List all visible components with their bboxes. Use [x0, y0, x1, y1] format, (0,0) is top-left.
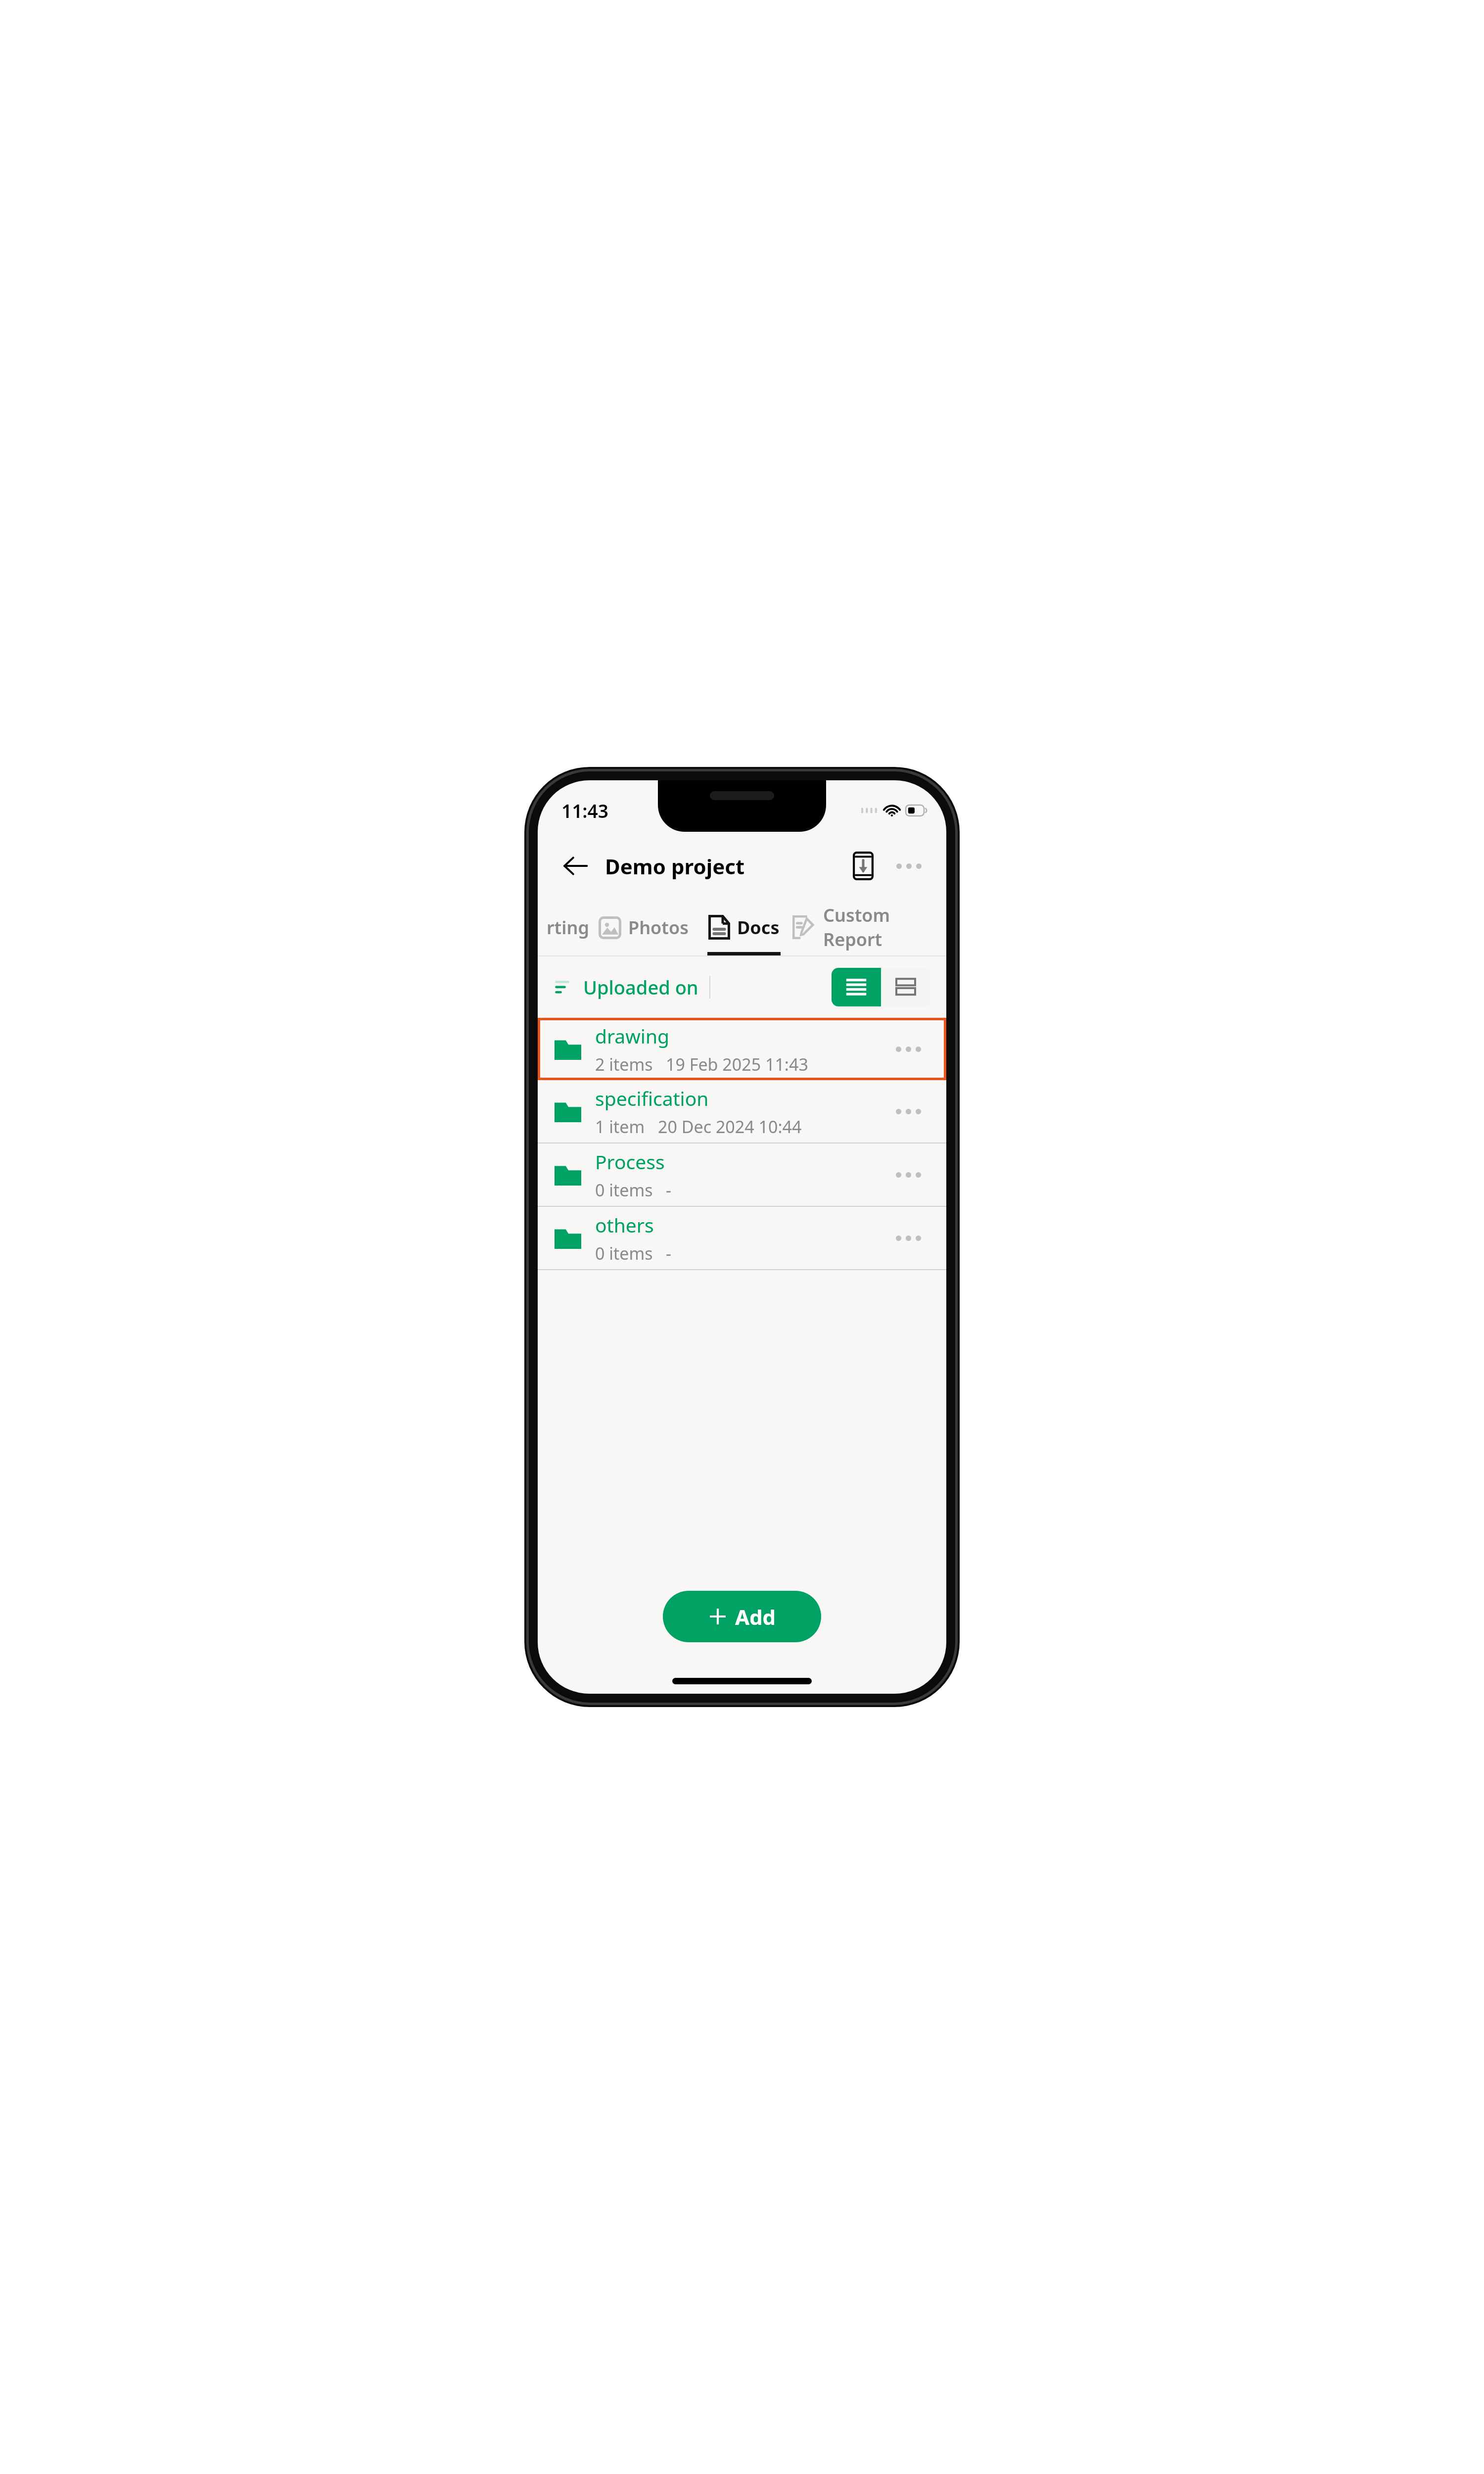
staticText: Custom Report	[823, 903, 946, 952]
staticText: -	[666, 1242, 671, 1265]
staticText: Uploaded on	[583, 974, 698, 1000]
button[interactable]: List view	[832, 968, 881, 1006]
button[interactable]: More options	[886, 843, 931, 889]
button[interactable]: Process	[538, 1143, 946, 1206]
staticText: 11:43	[561, 798, 608, 823]
staticText: 2 items	[595, 1053, 653, 1076]
staticText: -	[666, 1179, 671, 1201]
staticText: others	[595, 1212, 654, 1238]
staticText: 0 items	[595, 1242, 653, 1265]
button[interactable]: Download	[840, 843, 886, 889]
button[interactable]: Folder options	[887, 1217, 929, 1259]
button[interactable]: Folder options	[887, 1153, 929, 1196]
staticText: Add	[735, 1603, 776, 1631]
staticText: 19 Feb 2025 11:43	[666, 1053, 808, 1076]
button[interactable]: others	[538, 1207, 946, 1269]
button[interactable]: Custom Report	[792, 898, 946, 956]
button[interactable]: rting	[538, 898, 592, 956]
staticText: Demo project	[605, 852, 745, 880]
staticText: 0 items	[595, 1179, 653, 1201]
staticText: specification	[595, 1085, 709, 1111]
staticText: Process	[595, 1148, 665, 1175]
staticText: 1 item	[595, 1115, 645, 1138]
button[interactable]: Folder options	[887, 1028, 929, 1070]
button[interactable]: Uploaded on	[554, 974, 710, 1000]
staticText: Photos	[628, 915, 689, 940]
button[interactable]: specification	[538, 1080, 946, 1142]
staticText: rting	[547, 915, 589, 940]
staticText: drawing	[595, 1023, 669, 1049]
button[interactable]: Folder options	[887, 1090, 929, 1133]
staticText: Docs	[737, 915, 780, 940]
button[interactable]: Photos	[592, 898, 695, 956]
button[interactable]: Docs	[695, 898, 792, 956]
button[interactable]: Add	[663, 1591, 821, 1642]
button[interactable]: Grid view	[881, 968, 930, 1006]
button[interactable]: drawing	[538, 1018, 946, 1080]
button[interactable]: Back	[553, 843, 598, 889]
staticText: 20 Dec 2024 10:44	[658, 1115, 802, 1138]
